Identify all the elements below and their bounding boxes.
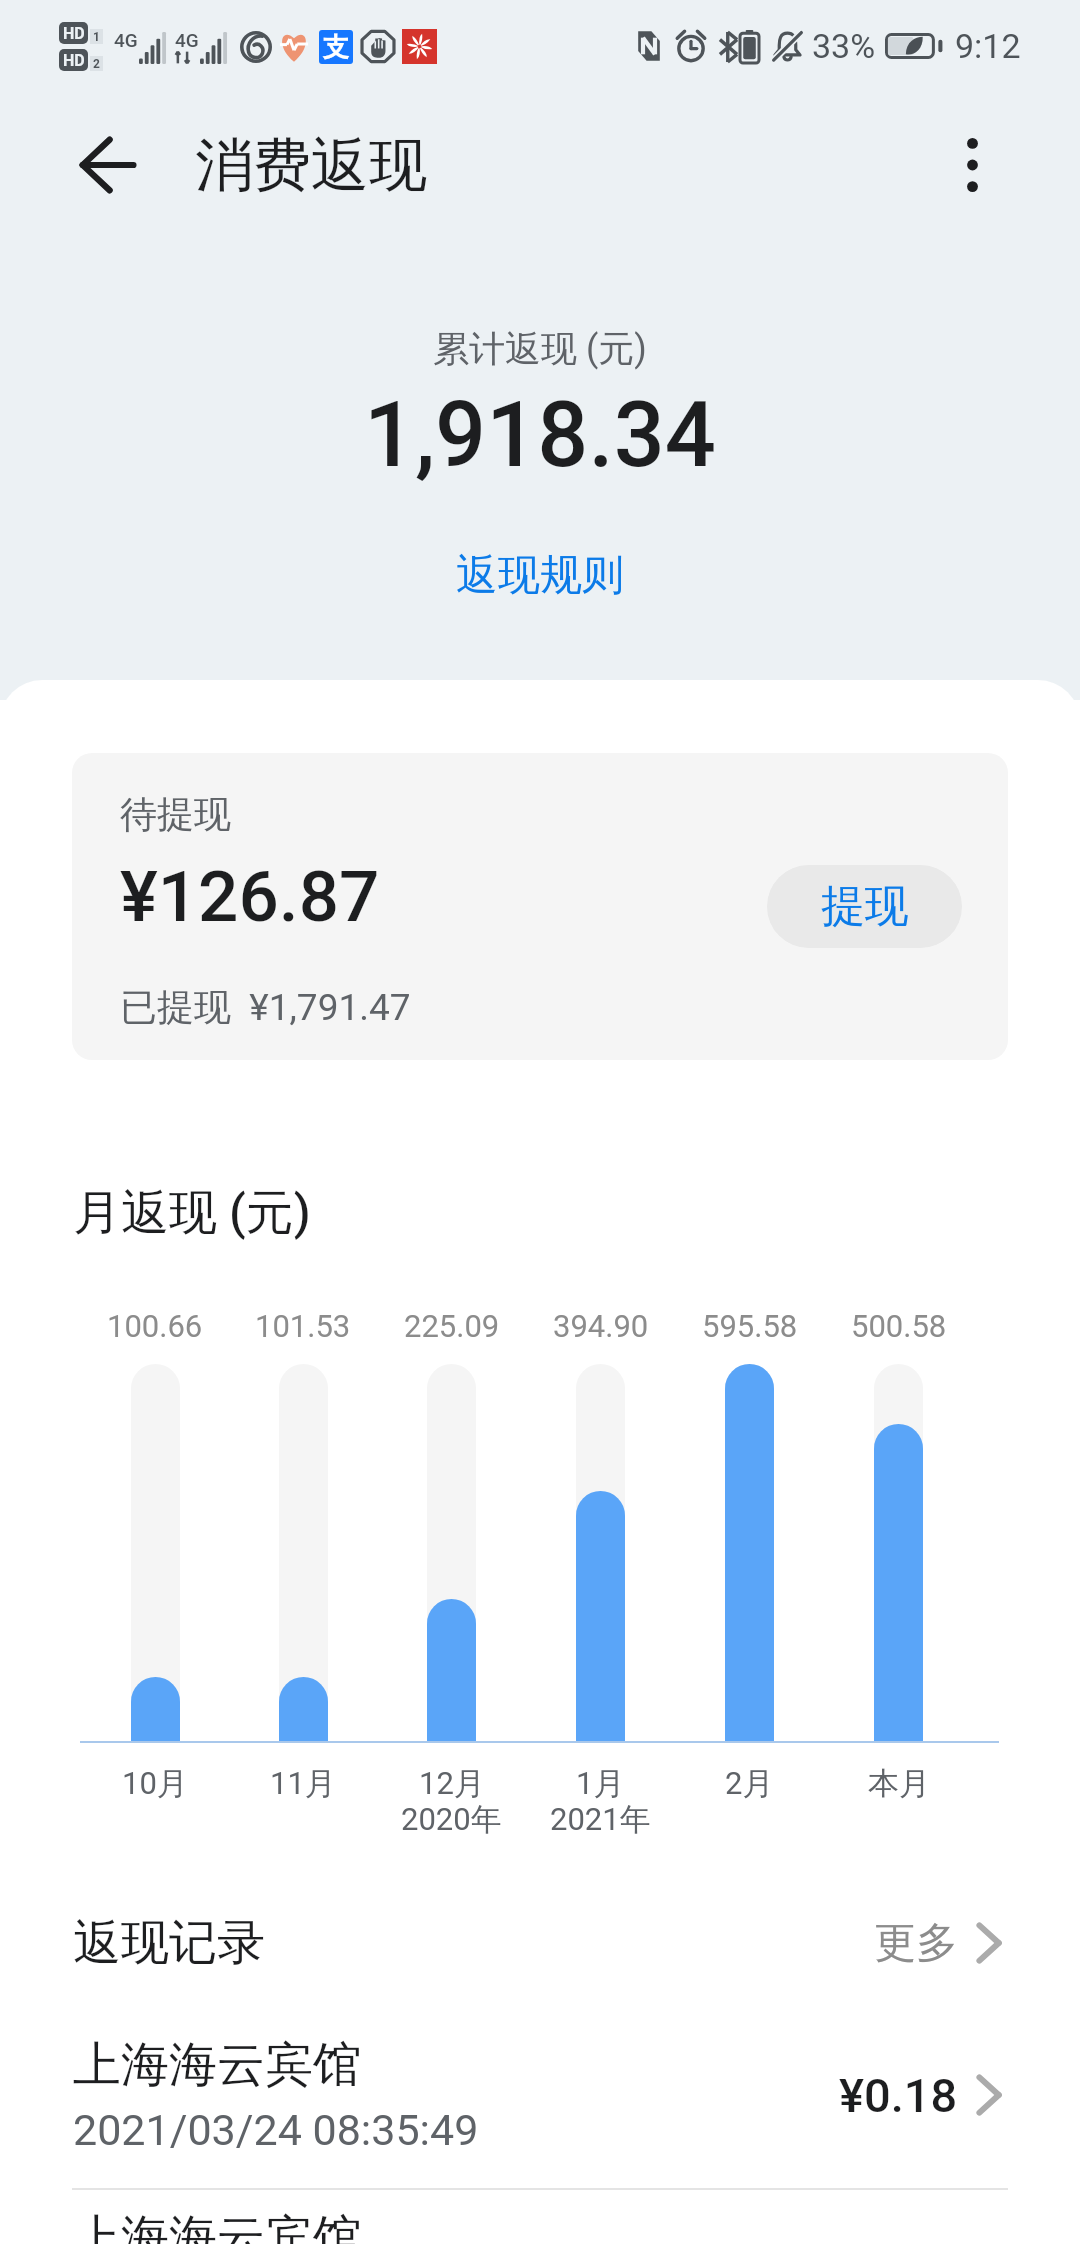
staticText: 支: [323, 31, 349, 64]
staticText: 11月: [270, 1764, 336, 1803]
staticText: 100.66: [107, 1308, 203, 1344]
staticText: ¥0.18: [839, 2068, 958, 2123]
staticText: 1月: [576, 1764, 625, 1803]
staticText: 12月: [419, 1764, 485, 1803]
staticText: 2月: [725, 1764, 774, 1803]
staticText: 上海海云宾馆: [73, 2208, 361, 2244]
staticText: 2021/03/24 08:35:49: [73, 2105, 479, 2155]
staticText: 4G: [175, 29, 199, 51]
staticText: HD: [63, 24, 85, 43]
staticText: 已提现 ¥1,791.47: [120, 984, 411, 1031]
staticText: 提现: [821, 879, 909, 934]
staticText: ¥126.87: [120, 855, 380, 938]
button[interactable]: 待提现: [72, 753, 1008, 1060]
staticText: 4G: [114, 29, 138, 51]
button[interactable]: 上海海云宾馆: [0, 2190, 1080, 2244]
staticText: 2: [93, 57, 100, 71]
staticText: HD: [63, 51, 85, 70]
staticText: 10月: [122, 1764, 188, 1803]
button[interactable]: 提现: [767, 865, 962, 948]
staticText: 394.90: [553, 1308, 649, 1344]
staticText: 1,918.34: [0, 383, 1080, 488]
staticText: 待提现: [120, 791, 231, 838]
staticText: 更多: [874, 1917, 958, 1970]
staticText: 月返现 (元): [73, 1183, 311, 1243]
button[interactable]: More options: [898, 91, 1046, 239]
button[interactable]: 上海海云宾馆: [0, 2017, 1080, 2188]
staticText: 101.53: [255, 1308, 351, 1344]
staticText: 500.58: [851, 1308, 947, 1344]
staticText: 2021年: [550, 1800, 651, 1839]
staticText: 上海海云宾馆: [73, 2035, 361, 2095]
staticText: 消费返现: [195, 129, 427, 202]
button[interactable]: 返现记录: [0, 1909, 1080, 1977]
staticText: 33%: [812, 26, 876, 66]
staticText: 返现记录: [73, 1913, 265, 1973]
staticText: 2020年: [401, 1800, 502, 1839]
staticText: 本月: [868, 1764, 930, 1803]
staticText: 累计返现 (元): [0, 326, 1080, 371]
staticText: 1: [93, 30, 100, 44]
staticText: 595.58: [702, 1308, 798, 1344]
button[interactable]: Back: [33, 91, 181, 239]
staticText: 225.09: [404, 1308, 500, 1344]
staticText: 9:12: [955, 26, 1021, 66]
button[interactable]: 返现规则: [426, 541, 654, 610]
staticText: 返现规则: [456, 549, 624, 602]
